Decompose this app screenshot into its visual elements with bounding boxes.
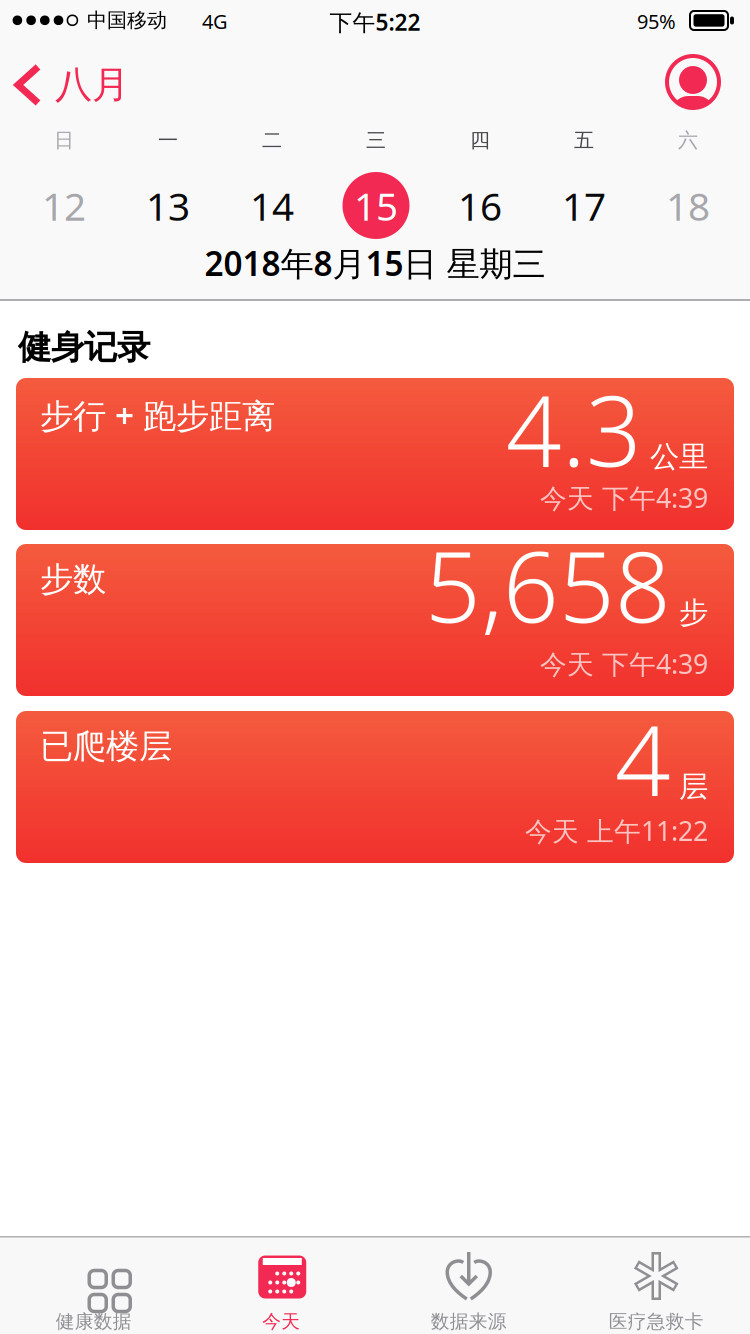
staticText: 4: [615, 694, 671, 823]
staticText: 今天: [262, 1310, 300, 1333]
staticText: 数据来源: [431, 1310, 507, 1333]
button[interactable]: 15: [324, 180, 428, 231]
staticText: 13: [146, 180, 190, 231]
staticText: 12: [42, 180, 86, 231]
staticText: 公里: [650, 439, 708, 475]
staticText: 下午5:22: [329, 7, 420, 37]
button[interactable]: 17: [532, 180, 636, 231]
staticText: 六: [678, 128, 698, 153]
staticText: 健身记录: [18, 327, 150, 368]
staticText: 15: [354, 180, 398, 231]
staticText: 五: [574, 128, 594, 153]
staticText: 中国移动: [87, 8, 167, 33]
staticText: 今天 下午4:39: [540, 480, 708, 515]
staticText: 步: [679, 595, 708, 631]
button[interactable]: 18: [636, 180, 740, 231]
staticText: 95%: [637, 8, 676, 35]
staticText: 17: [562, 180, 606, 231]
button[interactable]: 步行 + 跑步距离: [16, 378, 734, 530]
staticText: 日: [54, 128, 74, 153]
button[interactable]: 13: [116, 180, 220, 231]
staticText: 层: [679, 769, 708, 805]
staticText: 八月: [55, 62, 129, 108]
staticText: 步行 + 跑步距离: [40, 393, 275, 437]
staticText: 健康数据: [56, 1310, 132, 1333]
button[interactable]: 八月: [14, 62, 129, 108]
staticText: 已爬楼层: [40, 726, 172, 767]
staticText: 医疗急救卡: [609, 1310, 704, 1333]
staticText: 步数: [40, 559, 106, 600]
button[interactable]: 医疗急救卡: [562, 1236, 750, 1334]
button[interactable]: 14: [220, 180, 324, 231]
button[interactable]: [667, 56, 719, 108]
staticText: 4G: [202, 8, 228, 35]
staticText: 一: [158, 128, 178, 153]
staticText: 18: [666, 180, 710, 231]
button[interactable]: 健康数据: [0, 1236, 187, 1334]
staticText: 14: [250, 180, 294, 231]
staticText: 今天 上午11:22: [525, 813, 708, 848]
staticText: 16: [458, 180, 502, 231]
button[interactable]: 数据来源: [375, 1236, 562, 1334]
staticText: 4.3: [506, 364, 642, 493]
button[interactable]: 12: [12, 180, 116, 231]
staticText: 5,658: [425, 520, 671, 649]
button[interactable]: 已爬楼层: [16, 711, 734, 863]
staticText: 三: [366, 128, 386, 153]
button[interactable]: 今天: [187, 1236, 375, 1334]
staticText: 四: [470, 128, 490, 153]
staticText: 今天 下午4:39: [540, 646, 708, 681]
staticText: 二: [262, 128, 282, 153]
button[interactable]: 16: [428, 180, 532, 231]
button[interactable]: 步数: [16, 544, 734, 696]
staticText: 2018年8月15日 星期三: [204, 241, 545, 285]
